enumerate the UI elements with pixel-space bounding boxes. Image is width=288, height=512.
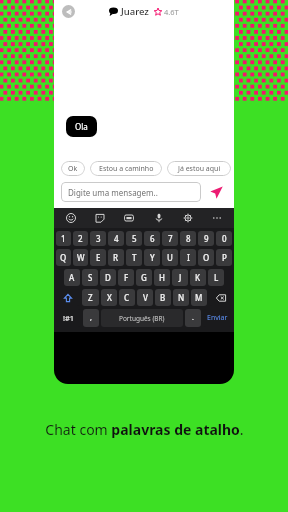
button[interactable]: Enviar bbox=[203, 309, 232, 327]
button[interactable]: 9 bbox=[198, 231, 214, 246]
button[interactable]: GIF bbox=[122, 211, 136, 225]
staticText: L bbox=[214, 272, 219, 283]
staticText: S bbox=[88, 272, 93, 283]
staticText: Ok bbox=[68, 164, 78, 174]
button[interactable]: . bbox=[185, 309, 201, 327]
button[interactable]: Já estou aqui bbox=[167, 161, 231, 176]
button[interactable]: Backspace bbox=[209, 289, 232, 306]
button[interactable]: Stickers bbox=[93, 211, 107, 225]
button[interactable]: Back bbox=[62, 5, 75, 18]
button[interactable]: 6 bbox=[144, 231, 160, 246]
staticText: B bbox=[160, 292, 166, 303]
staticText: Y bbox=[150, 252, 155, 263]
staticText: 7 bbox=[168, 233, 173, 244]
staticText: 9 bbox=[204, 233, 209, 244]
button[interactable]: V bbox=[137, 289, 153, 306]
staticText: U bbox=[167, 252, 173, 263]
button[interactable]: Digite uma mensagem.. bbox=[61, 182, 201, 202]
button[interactable]: 4 bbox=[108, 231, 124, 246]
button[interactable]: Estou a caminho bbox=[90, 161, 162, 176]
button[interactable]: F bbox=[118, 269, 134, 286]
button[interactable]: Emoji bbox=[64, 211, 78, 225]
button[interactable]: G bbox=[136, 269, 152, 286]
button[interactable]: Shift bbox=[56, 289, 80, 306]
staticText: 5 bbox=[132, 233, 137, 244]
button[interactable]: J bbox=[172, 269, 188, 286]
button[interactable]: 3 bbox=[90, 231, 106, 246]
staticText: Enviar bbox=[207, 313, 228, 323]
staticText: H bbox=[159, 272, 165, 283]
staticText: G bbox=[141, 272, 147, 283]
staticText: Português (BR) bbox=[119, 314, 165, 323]
button[interactable]: P bbox=[216, 249, 232, 266]
staticText: 6 bbox=[150, 233, 155, 244]
staticText: O bbox=[203, 252, 210, 263]
button[interactable]: Voice input bbox=[152, 211, 166, 225]
button[interactable]: 1 bbox=[56, 231, 71, 246]
button[interactable]: 7 bbox=[162, 231, 178, 246]
button[interactable]: S bbox=[82, 269, 98, 286]
button[interactable]: !#1 bbox=[56, 309, 81, 327]
staticText: 8 bbox=[186, 233, 191, 244]
staticText: T bbox=[132, 252, 137, 263]
staticText: 1 bbox=[61, 233, 66, 244]
button[interactable]: Z bbox=[82, 289, 99, 306]
staticText: V bbox=[143, 292, 148, 303]
staticText: , bbox=[90, 313, 92, 323]
button[interactable]: Settings bbox=[181, 211, 195, 225]
button[interactable]: W bbox=[73, 249, 88, 266]
staticText: 3 bbox=[96, 233, 101, 244]
staticText: Chat com palavras de atalho. bbox=[45, 420, 244, 439]
button[interactable]: L bbox=[208, 269, 224, 286]
button[interactable]: Ok bbox=[61, 161, 85, 176]
button[interactable]: K bbox=[190, 269, 206, 286]
staticText: Já estou aqui bbox=[178, 164, 221, 174]
staticText: Estou a caminho bbox=[99, 164, 154, 174]
staticText: 4 bbox=[114, 233, 119, 244]
button[interactable]: Y bbox=[144, 249, 160, 266]
button[interactable]: B bbox=[155, 289, 171, 306]
button[interactable]: Ola bbox=[66, 116, 97, 137]
button[interactable]: A bbox=[64, 269, 80, 286]
button[interactable]: Q bbox=[56, 249, 71, 266]
staticText: R bbox=[113, 252, 119, 263]
button[interactable]: N bbox=[173, 289, 189, 306]
staticText: Ola bbox=[75, 121, 88, 132]
staticText: F bbox=[124, 272, 129, 283]
button[interactable]: 0 bbox=[216, 231, 232, 246]
staticText: K bbox=[195, 272, 201, 283]
staticText: I bbox=[187, 252, 190, 263]
button[interactable]: R bbox=[108, 249, 124, 266]
staticText: P bbox=[222, 252, 227, 263]
button[interactable]: H bbox=[154, 269, 170, 286]
staticText: J bbox=[179, 272, 182, 283]
button[interactable]: D bbox=[100, 269, 116, 286]
button[interactable]: 5 bbox=[126, 231, 142, 246]
button[interactable]: X bbox=[101, 289, 117, 306]
staticText: Z bbox=[88, 292, 93, 303]
button[interactable]: , bbox=[83, 309, 99, 327]
button[interactable]: Send bbox=[207, 183, 225, 201]
button[interactable]: I bbox=[180, 249, 196, 266]
button[interactable]: T bbox=[126, 249, 142, 266]
staticText: Q bbox=[60, 252, 67, 263]
staticText: W bbox=[77, 252, 85, 263]
button[interactable]: O bbox=[198, 249, 214, 266]
staticText: M bbox=[195, 292, 203, 303]
button[interactable]: M bbox=[191, 289, 207, 306]
button[interactable]: 2 bbox=[73, 231, 88, 246]
button[interactable]: E bbox=[90, 249, 106, 266]
staticText: D bbox=[105, 272, 111, 283]
staticText: Juarez bbox=[121, 5, 149, 18]
button[interactable]: Português (BR) bbox=[101, 309, 183, 327]
button[interactable]: U bbox=[162, 249, 178, 266]
button[interactable]: 8 bbox=[180, 231, 196, 246]
button[interactable]: C bbox=[119, 289, 135, 306]
staticText: N bbox=[178, 292, 185, 303]
button[interactable]: More bbox=[210, 211, 224, 225]
staticText: !#1 bbox=[63, 313, 75, 323]
staticText: . bbox=[192, 313, 194, 323]
staticText: 4.6T bbox=[164, 7, 179, 17]
staticText: Digite uma mensagem.. bbox=[68, 187, 158, 198]
staticText: A bbox=[69, 272, 75, 283]
